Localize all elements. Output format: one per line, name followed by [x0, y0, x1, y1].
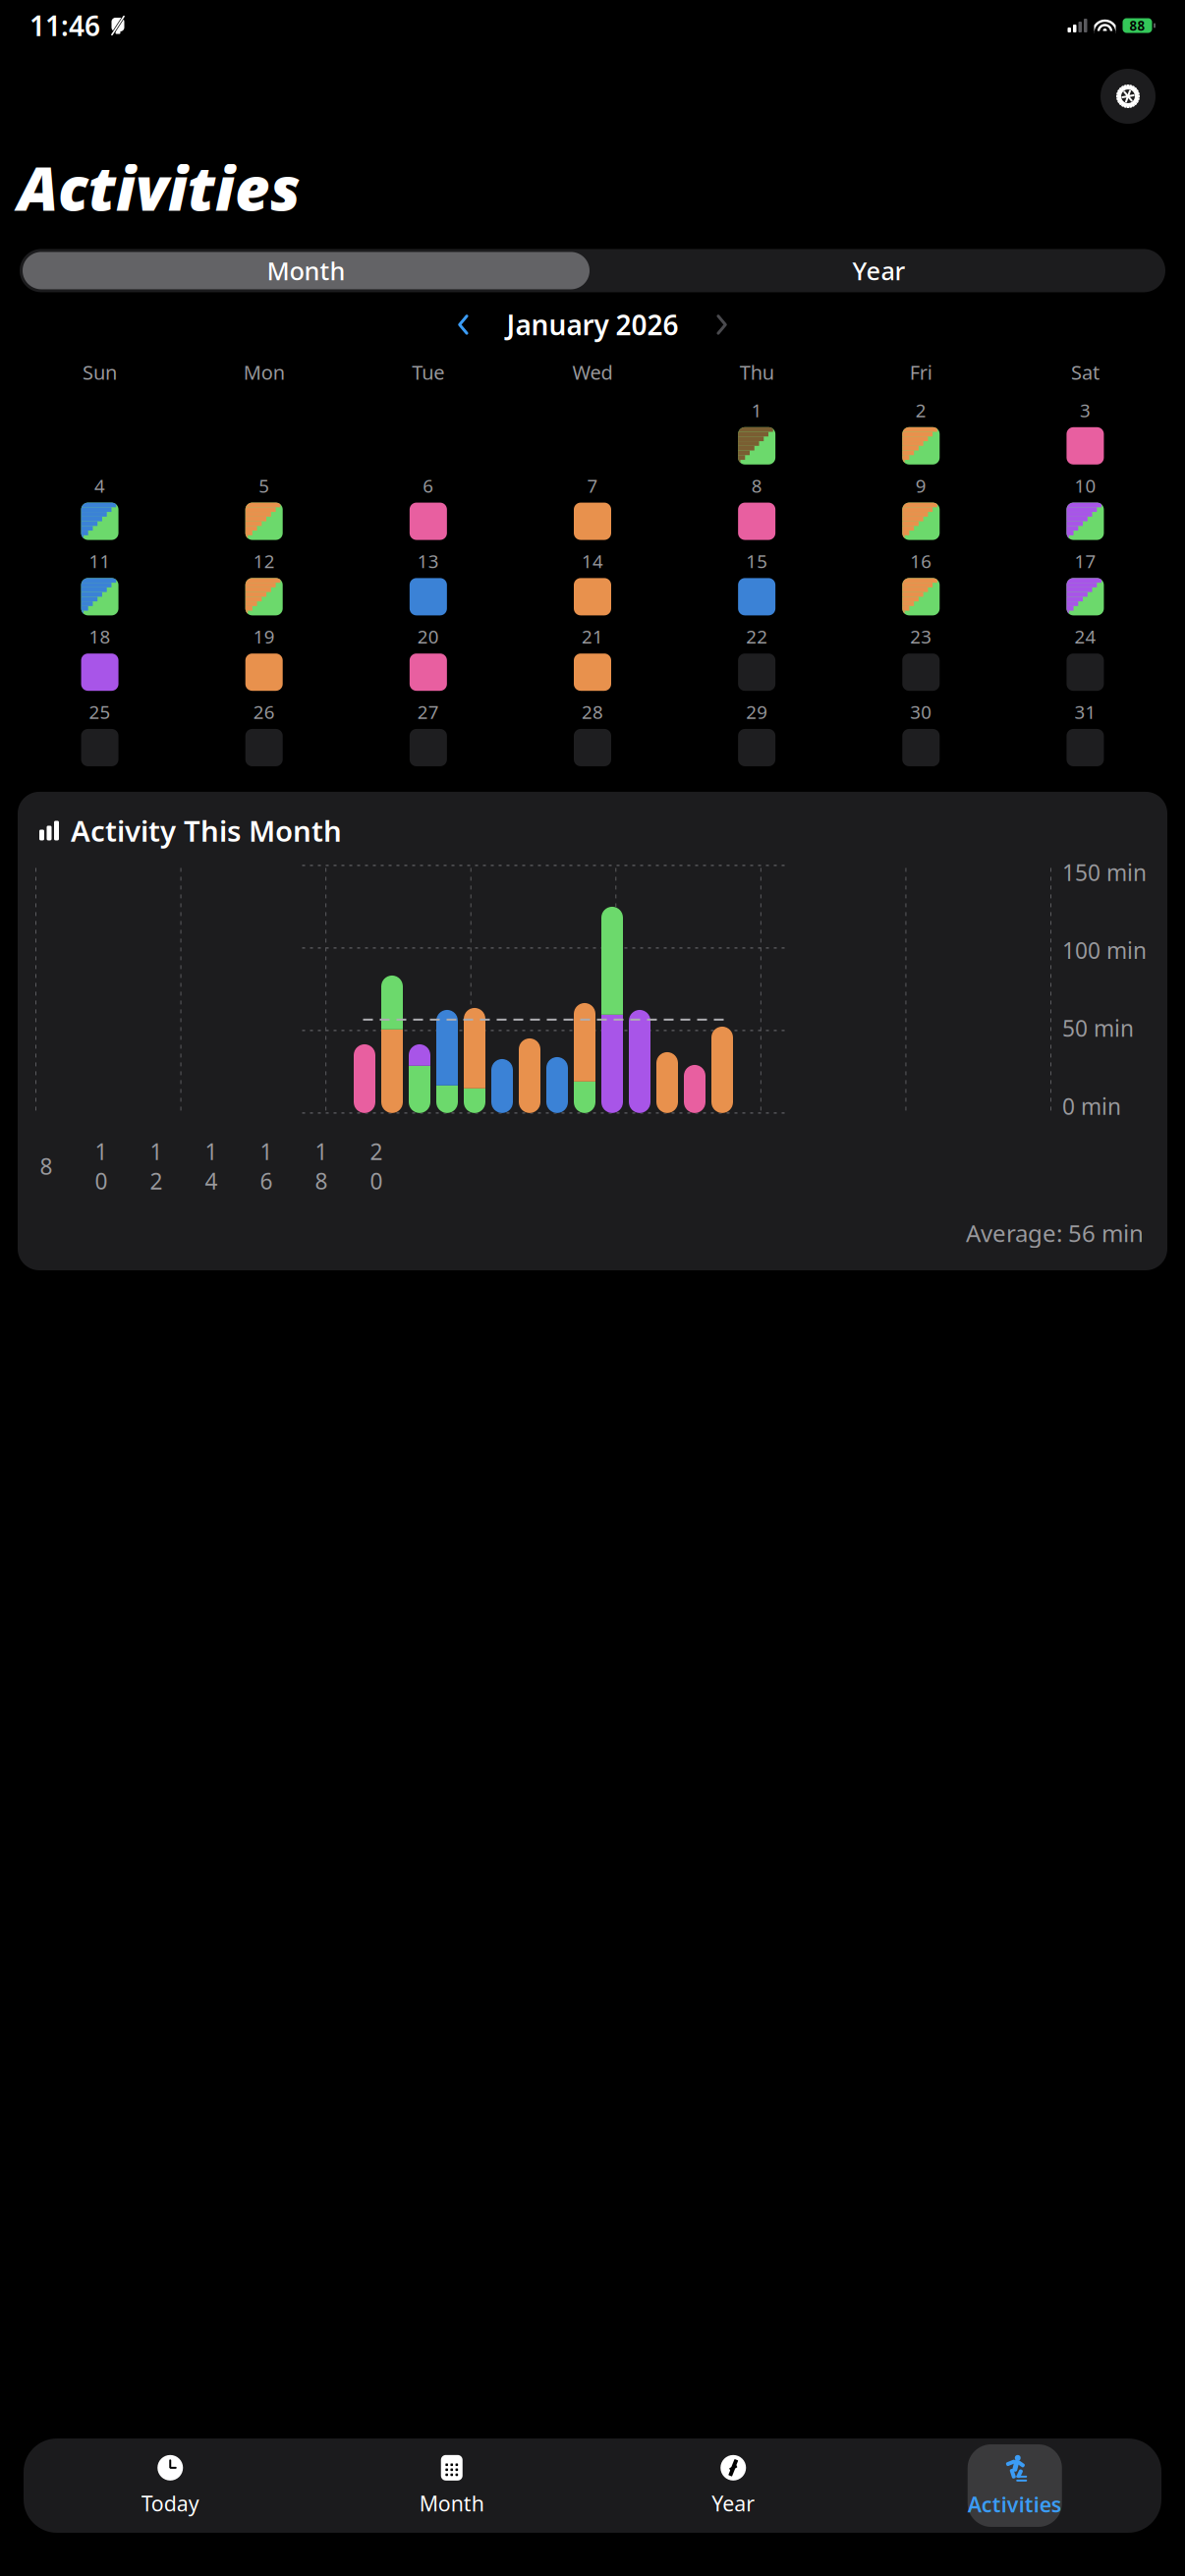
staticText: 11:46 — [29, 7, 100, 44]
button[interactable]: Today — [123, 2444, 217, 2527]
staticText: 4 — [94, 473, 105, 498]
staticText: 31 — [1074, 700, 1096, 724]
button[interactable]: 23 — [898, 624, 944, 691]
button[interactable]: 2 — [898, 398, 944, 465]
staticText: Activities — [968, 2490, 1062, 2518]
button[interactable]: 31 — [1063, 700, 1108, 766]
staticText: 24 — [1074, 624, 1096, 649]
button[interactable]: 17 — [1063, 549, 1108, 615]
staticText: 26 — [253, 700, 275, 724]
button[interactable]: 1 — [734, 398, 779, 465]
staticText: 18 — [89, 624, 111, 649]
staticText: 150 min — [1062, 858, 1147, 887]
button[interactable]: Previous month — [444, 312, 483, 337]
staticText: 10 — [1074, 473, 1096, 498]
button[interactable]: 8 — [734, 473, 779, 540]
button[interactable]: 21 — [570, 624, 615, 691]
button[interactable]: 7 — [570, 473, 615, 540]
button[interactable]: 19 — [241, 624, 287, 691]
staticText: Average: 56 min — [966, 1217, 1144, 1249]
button[interactable]: Settings — [1099, 67, 1157, 126]
staticText: 10 — [95, 1137, 108, 1196]
button[interactable]: 25 — [77, 700, 122, 766]
staticText: 5 — [259, 473, 269, 498]
staticText: 50 min — [1062, 1013, 1134, 1043]
staticText: Today — [141, 2489, 199, 2517]
button[interactable]: 30 — [898, 700, 944, 766]
button[interactable]: 15 — [734, 549, 779, 615]
staticText: Fri — [910, 359, 932, 385]
staticText: 11 — [89, 549, 111, 573]
button[interactable]: 14 — [570, 549, 615, 615]
button[interactable]: 6 — [406, 473, 451, 540]
button[interactable]: 18 — [77, 624, 122, 691]
button[interactable]: 12 — [241, 549, 287, 615]
staticText: 9 — [916, 473, 926, 498]
staticText: 17 — [1074, 549, 1096, 573]
staticText: 2 — [916, 398, 926, 422]
staticText: Year — [712, 2489, 755, 2517]
staticText: 88 — [1129, 17, 1145, 34]
button[interactable]: Month — [405, 2444, 499, 2527]
staticText: 3 — [1080, 398, 1091, 422]
button[interactable]: 13 — [406, 549, 451, 615]
button[interactable]: Next month — [702, 312, 741, 337]
staticText: 16 — [910, 549, 932, 573]
staticText: 18 — [315, 1137, 328, 1196]
staticText: 15 — [746, 549, 767, 573]
staticText: 27 — [418, 700, 439, 724]
staticText: 100 min — [1062, 935, 1147, 965]
staticText: Month — [267, 254, 345, 287]
staticText: January 2026 — [507, 306, 678, 343]
staticText: 8 — [40, 1151, 53, 1181]
staticText: 19 — [253, 624, 275, 649]
staticText: Thu — [739, 359, 774, 385]
staticText: 8 — [751, 473, 762, 498]
button[interactable]: 16 — [898, 549, 944, 615]
staticText: Month — [419, 2489, 484, 2517]
staticText: 22 — [746, 624, 767, 649]
button[interactable]: 24 — [1063, 624, 1108, 691]
button[interactable]: 29 — [734, 700, 779, 766]
button[interactable]: Month — [20, 249, 592, 292]
staticText: 25 — [89, 700, 111, 724]
staticText: 21 — [582, 624, 603, 649]
staticText: Year — [852, 254, 905, 287]
button[interactable]: 9 — [898, 473, 944, 540]
staticText: 30 — [910, 700, 932, 724]
button[interactable]: 20 — [406, 624, 451, 691]
staticText: 23 — [910, 624, 932, 649]
staticText: 6 — [423, 473, 434, 498]
button[interactable]: 10 — [1063, 473, 1108, 540]
button[interactable]: 22 — [734, 624, 779, 691]
button[interactable]: 28 — [570, 700, 615, 766]
staticText: 13 — [418, 549, 439, 573]
button[interactable]: 4 — [77, 473, 122, 540]
button[interactable]: 26 — [241, 700, 287, 766]
button[interactable]: Activities — [968, 2444, 1062, 2527]
button[interactable]: Year — [686, 2444, 780, 2527]
staticText: Activities — [18, 147, 301, 227]
staticText: Mon — [243, 359, 285, 385]
button[interactable]: 3 — [1063, 398, 1108, 465]
staticText: 16 — [260, 1137, 273, 1196]
staticText: Wed — [572, 359, 613, 385]
staticText: Sat — [1071, 359, 1099, 385]
button[interactable]: 27 — [406, 700, 451, 766]
staticText: 12 — [150, 1137, 163, 1196]
button[interactable]: Year — [592, 249, 1165, 292]
button[interactable]: 11 — [77, 549, 122, 615]
staticText: 12 — [253, 549, 275, 573]
staticText: 20 — [370, 1137, 383, 1196]
button[interactable]: 5 — [241, 473, 287, 540]
